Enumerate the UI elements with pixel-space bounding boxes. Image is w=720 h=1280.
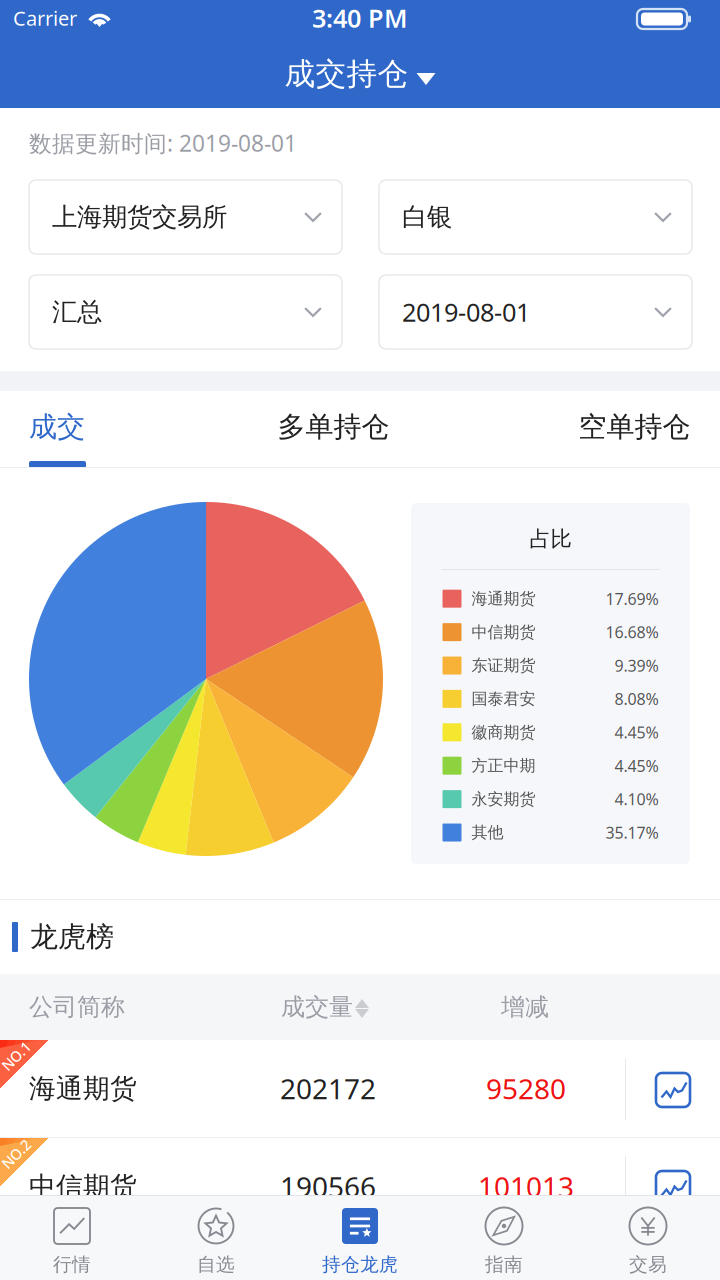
staticText: 35.17% — [605, 822, 658, 843]
staticText: 4.45% — [614, 722, 658, 743]
button[interactable]: 空单持仓 — [512, 391, 720, 468]
button[interactable]: 交易 — [576, 1196, 720, 1280]
staticText: 龙虎榜 — [30, 920, 114, 954]
button[interactable]: 指南 — [432, 1196, 576, 1280]
button[interactable]: 2019-08-01 — [379, 275, 692, 349]
staticText: 中信期货 — [471, 622, 535, 642]
staticText: 行情 — [53, 1253, 91, 1276]
button[interactable]: 白银 — [379, 180, 692, 254]
staticText: NO.2 — [0, 1144, 33, 1164]
staticText: 数据更新时间: 2019-08-01 — [29, 128, 297, 158]
button[interactable]: 成交 — [0, 391, 230, 468]
staticText: 国泰君安 — [471, 689, 535, 709]
staticText: 公司简称 — [29, 992, 125, 1022]
button[interactable]: 持仓龙虎 — [288, 1196, 432, 1280]
staticText: 永安期货 — [471, 789, 535, 809]
button[interactable]: 行情 — [0, 1196, 144, 1280]
staticText: 190566 — [280, 1168, 376, 1205]
staticText: 16.68% — [605, 621, 658, 643]
staticText: 多单持仓 — [277, 410, 389, 444]
button[interactable]: 成交持仓 — [0, 44, 720, 108]
staticText: 4.10% — [614, 788, 658, 810]
staticText: 白银 — [402, 201, 452, 232]
button[interactable]: 中信期货 — [0, 1138, 720, 1235]
staticText: 17.69% — [605, 588, 658, 609]
staticText: 指南 — [485, 1253, 523, 1276]
staticText: 8.08% — [614, 688, 658, 709]
button[interactable]: 上海期货交易所 — [29, 180, 342, 254]
staticText: 徽商期货 — [471, 722, 535, 742]
staticText: 方正中期 — [471, 756, 535, 776]
staticText: 空单持仓 — [578, 410, 690, 444]
staticText: 成交量 — [281, 992, 353, 1022]
staticText: 9.39% — [614, 655, 658, 676]
staticText: 海通期货 — [29, 1072, 137, 1105]
button[interactable]: 海通期货 — [0, 1040, 720, 1137]
staticText: 东证期货 — [471, 656, 535, 675]
button[interactable]: 汇总 — [29, 275, 342, 349]
staticText: 占比 — [529, 526, 571, 552]
staticText: Carrier — [13, 5, 77, 31]
staticText: 95280 — [486, 1070, 566, 1107]
button[interactable]: 自选 — [144, 1196, 288, 1280]
button[interactable]: 多单持仓 — [211, 391, 456, 468]
staticText: 中信期货 — [29, 1170, 137, 1203]
staticText: 海通期货 — [471, 589, 535, 609]
staticText: 上海期货交易所 — [52, 201, 227, 232]
staticText: 汇总 — [52, 296, 102, 327]
staticText: 202172 — [280, 1070, 376, 1107]
staticText: 成交持仓 — [284, 55, 408, 93]
staticText: 持仓龙虎 — [322, 1253, 398, 1276]
staticText: 自选 — [197, 1253, 235, 1276]
staticText: 101013 — [478, 1168, 574, 1205]
staticText: 增减 — [501, 992, 549, 1022]
staticText: 2019-08-01 — [402, 295, 530, 329]
staticText: 交易 — [629, 1253, 667, 1276]
staticText: 3:40 PM — [312, 1, 408, 35]
staticText: 成交 — [29, 410, 85, 444]
staticText: 4.45% — [614, 755, 658, 776]
staticText: NO.1 — [0, 1046, 33, 1066]
staticText: 其他 — [471, 823, 503, 842]
